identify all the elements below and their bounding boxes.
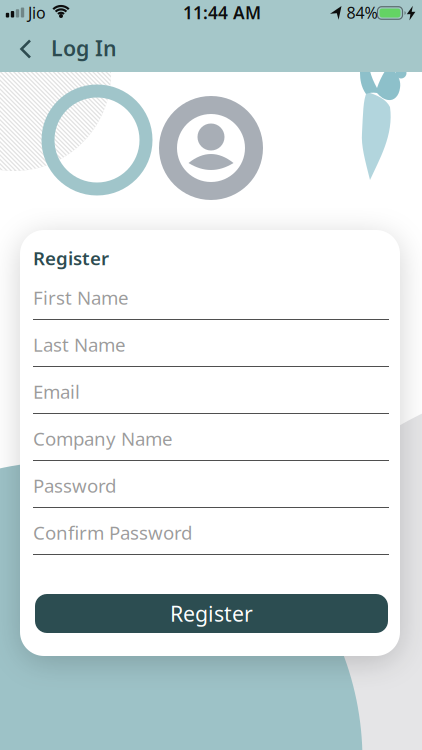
staticText: Password xyxy=(33,473,116,498)
button[interactable]: Company Name xyxy=(33,414,389,461)
button[interactable]: Password xyxy=(33,461,389,508)
staticText: Email xyxy=(33,379,80,404)
staticText: 84% xyxy=(346,2,377,23)
button[interactable]: Register xyxy=(35,594,388,633)
staticText: First Name xyxy=(33,285,129,310)
staticText: Log In xyxy=(51,34,117,62)
staticText: Register xyxy=(170,599,253,628)
button[interactable]: Confirm Password xyxy=(33,508,389,555)
button[interactable]: Last Name xyxy=(33,320,389,367)
staticText: Confirm Password xyxy=(33,520,192,545)
staticText: Last Name xyxy=(33,332,126,357)
button[interactable]: Back xyxy=(18,39,38,59)
staticText: Jio xyxy=(28,2,46,23)
staticText: Register xyxy=(33,246,109,270)
staticText: 11:44 AM xyxy=(183,1,261,24)
button[interactable]: Email xyxy=(33,367,389,414)
button[interactable]: First Name xyxy=(33,273,389,320)
staticText: Company Name xyxy=(33,426,173,451)
